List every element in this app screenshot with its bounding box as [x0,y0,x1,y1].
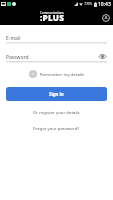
button[interactable]: Show password [98,52,107,61]
button[interactable]: Remember my details [0,69,113,79]
staticText: 10:43 [98,1,111,8]
button[interactable]: Account [100,12,112,24]
staticText: Remember my details [40,71,85,77]
staticText: Password [6,54,29,61]
staticText: E-mail [6,35,21,42]
button[interactable]: Sign in [6,87,107,101]
staticText: Forgot your password? [33,125,80,131]
staticText: 78% [84,1,93,7]
staticText: Or register your details [33,109,80,115]
staticText: :PLUS [40,12,65,23]
staticText: Communications [40,11,64,15]
button[interactable]: Forgot your password? [0,123,113,132]
button[interactable]: Or register your details [0,107,113,116]
staticText: Sign in [49,91,64,97]
